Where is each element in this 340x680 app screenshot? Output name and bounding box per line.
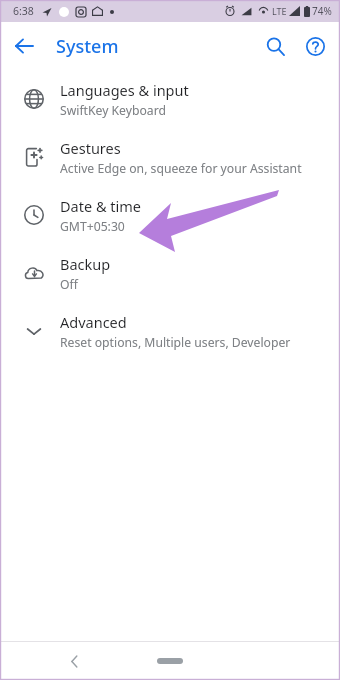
staticText: System <box>56 34 119 59</box>
staticText: Off <box>60 276 78 293</box>
button[interactable]: Languages & input <box>0 70 340 128</box>
staticText: Gestures <box>60 138 121 158</box>
staticText: Languages & input <box>60 80 189 100</box>
button[interactable]: Back <box>58 645 90 677</box>
button[interactable]: Back <box>8 30 40 62</box>
button[interactable]: Gestures <box>0 128 340 186</box>
button[interactable]: Backup <box>0 244 340 302</box>
staticText: Date & time <box>60 196 141 216</box>
staticText: 6:38 <box>13 4 34 18</box>
staticText: Active Edge on, squeeze for your Assista… <box>60 160 302 177</box>
button[interactable]: Search <box>258 29 292 63</box>
staticText: Backup <box>60 254 111 274</box>
staticText: 74% <box>312 4 332 18</box>
button[interactable]: Home <box>150 651 190 671</box>
staticText: SwiftKey Keyboard <box>60 102 166 119</box>
button[interactable]: Help <box>298 29 332 63</box>
staticText: Advanced <box>60 312 127 332</box>
staticText: GMT+05:30 <box>60 218 125 235</box>
staticText: LTE <box>272 5 287 17</box>
button[interactable]: Advanced <box>0 302 340 360</box>
staticText: Reset options, Multiple users, Developer… <box>60 334 324 351</box>
button[interactable]: Date & time <box>0 186 340 244</box>
